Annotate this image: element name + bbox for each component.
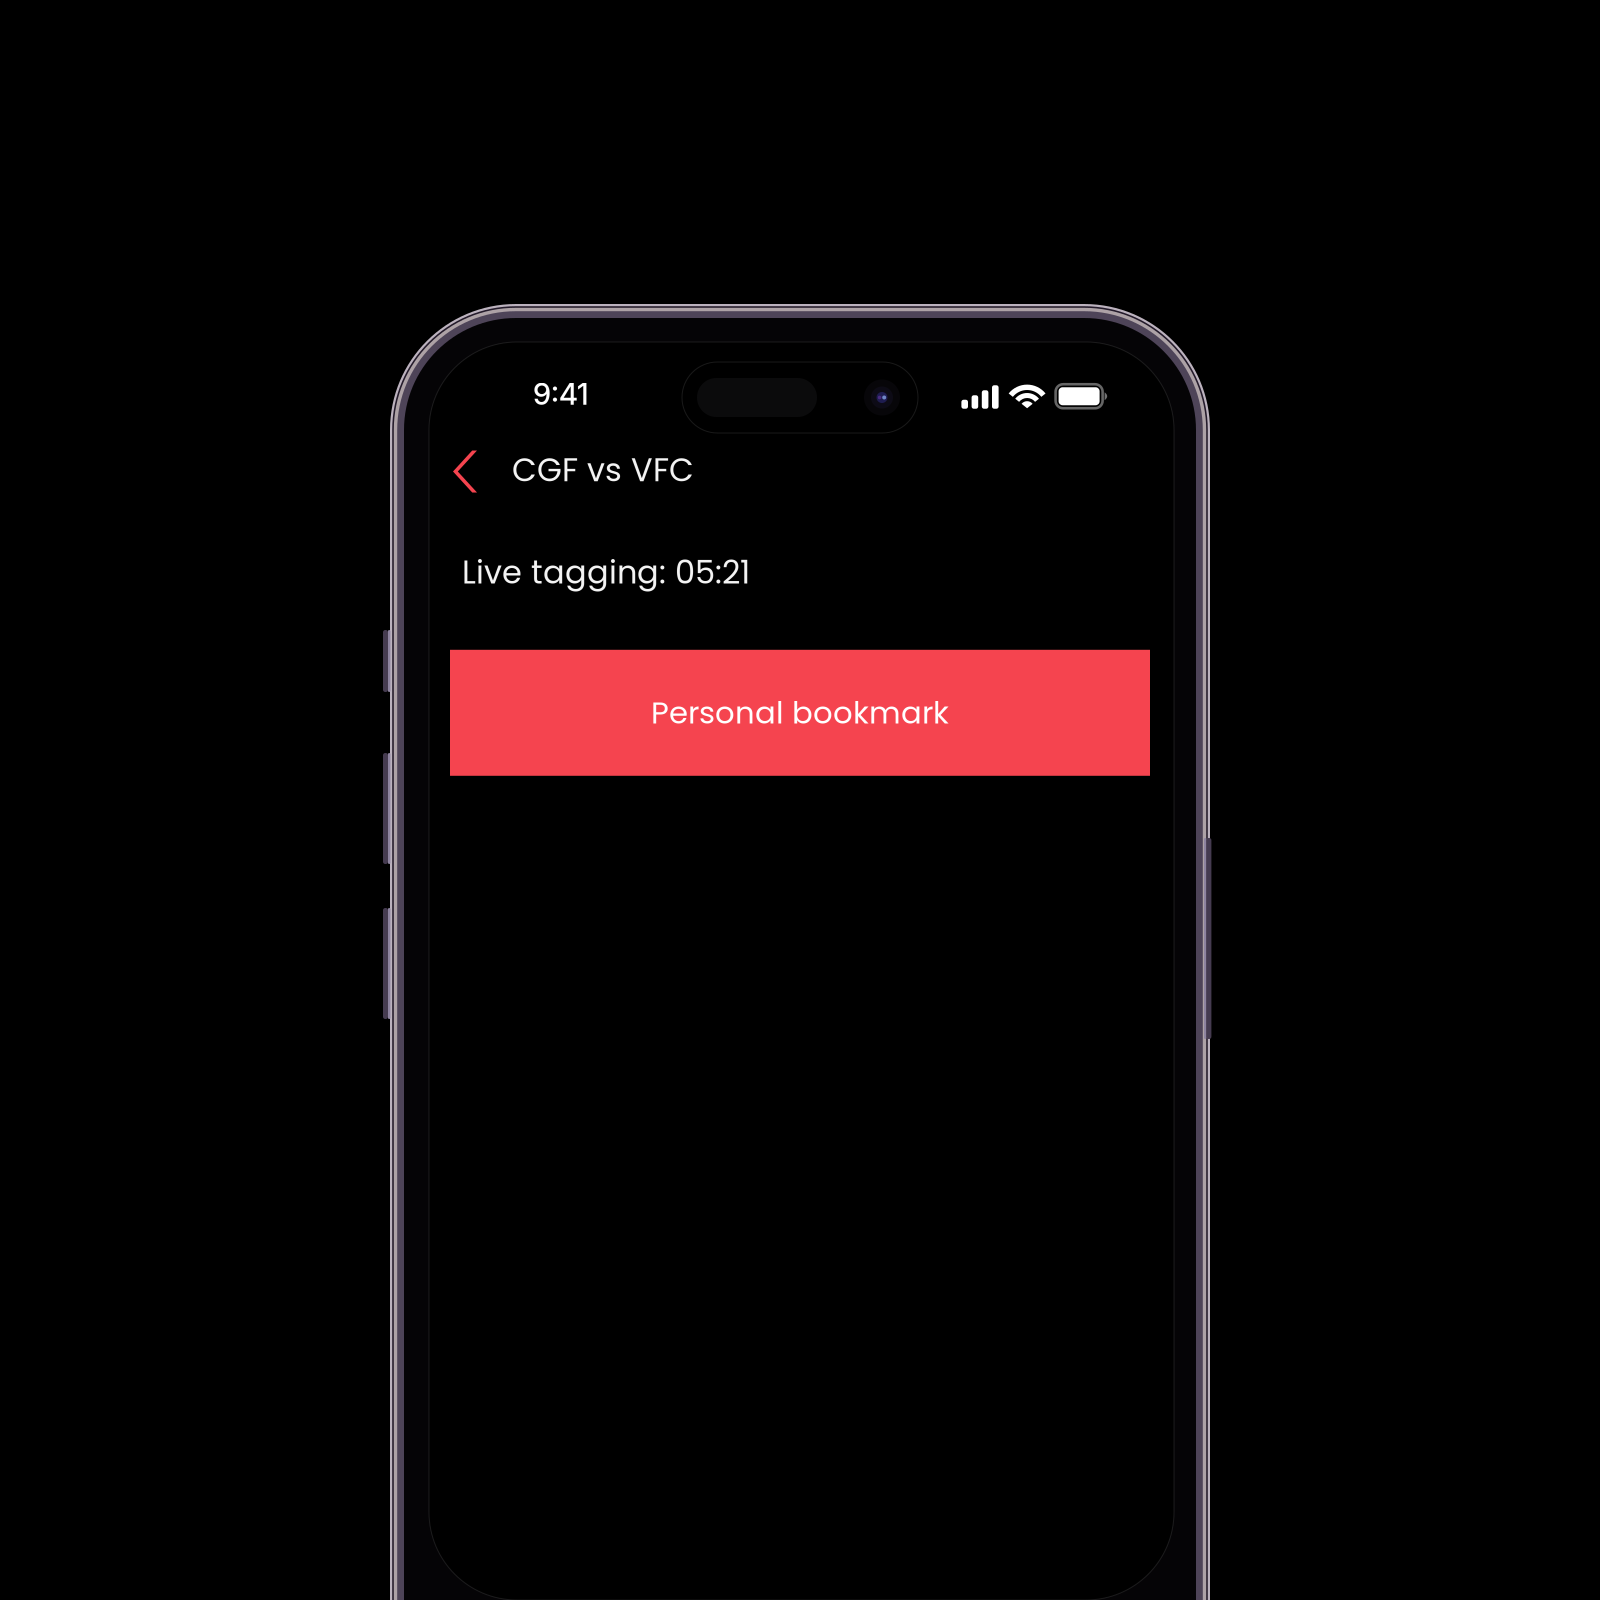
staticText: Live tagging: 05:21 <box>462 550 750 595</box>
button[interactable]: Personal bookmark <box>450 650 1150 776</box>
staticText: CGF vs VFC <box>512 448 694 492</box>
staticText: Personal bookmark <box>651 691 949 734</box>
button[interactable]: Back <box>429 435 512 504</box>
staticText: 9:41 <box>533 376 589 412</box>
